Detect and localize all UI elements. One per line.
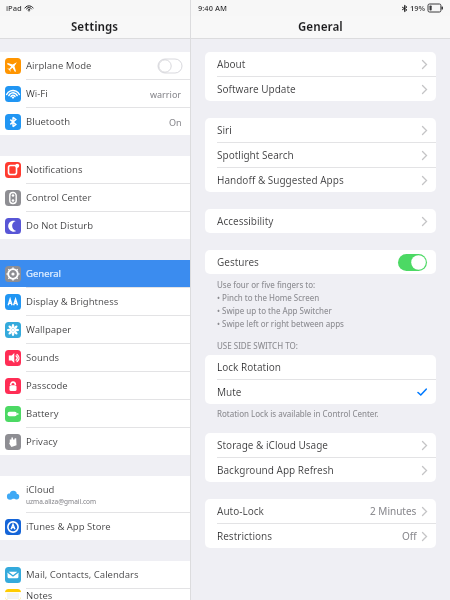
button[interactable]: Siri bbox=[205, 118, 436, 142]
staticText: Passcode bbox=[26, 379, 68, 392]
staticText: 19% bbox=[410, 3, 426, 13]
button[interactable]: Accessibility bbox=[205, 209, 436, 233]
staticText: USE SIDE SWITCH TO: bbox=[217, 340, 298, 351]
button[interactable]: Mute bbox=[205, 380, 436, 404]
button[interactable]: iTunes & App Store bbox=[0, 513, 190, 540]
staticText: On bbox=[169, 116, 182, 128]
staticText: Notifications bbox=[26, 163, 83, 176]
button[interactable]: Wi-Fi bbox=[0, 80, 190, 107]
button[interactable]: iCloud bbox=[0, 476, 190, 512]
button[interactable]: Do Not Disturb bbox=[0, 212, 190, 239]
staticText: 9:40 AM bbox=[198, 3, 227, 13]
staticText: Control Center bbox=[26, 191, 92, 204]
staticText: Battery bbox=[26, 407, 59, 420]
staticText: Siri bbox=[217, 123, 422, 137]
staticText: 2 Minutes bbox=[370, 504, 417, 518]
staticText: Auto-Lock bbox=[217, 504, 370, 518]
staticText: Storage & iCloud Usage bbox=[217, 438, 422, 452]
staticText: iCloud bbox=[26, 483, 55, 496]
button[interactable]: About bbox=[205, 52, 436, 76]
staticText: Privacy bbox=[26, 435, 58, 448]
button[interactable]: Background App Refresh bbox=[205, 458, 436, 482]
staticText: Use four or five fingers to: bbox=[217, 279, 316, 290]
button[interactable]: Passcode bbox=[0, 372, 190, 399]
staticText: Wallpaper bbox=[26, 323, 72, 336]
button[interactable]: Battery bbox=[0, 400, 190, 427]
staticText: • Swipe left or right between apps bbox=[217, 318, 344, 329]
button[interactable]: Notes bbox=[0, 589, 190, 600]
staticText: • Pinch to the Home Screen bbox=[217, 292, 320, 303]
button[interactable]: Handoff & Suggested Apps bbox=[205, 168, 436, 192]
button[interactable]: Software Update bbox=[205, 77, 436, 101]
button[interactable]: Storage & iCloud Usage bbox=[205, 433, 436, 457]
button[interactable]: Notifications bbox=[0, 156, 190, 183]
staticText: uzma.aliza@gmail.com bbox=[26, 497, 97, 506]
button[interactable]: Mail, Contacts, Calendars bbox=[0, 561, 190, 588]
staticText: General bbox=[26, 267, 62, 280]
staticText: • Swipe up to the App Switcher bbox=[217, 305, 332, 316]
button[interactable]: Auto-Lock bbox=[205, 499, 436, 523]
button[interactable]: Privacy bbox=[0, 428, 190, 455]
staticText: Notes bbox=[26, 589, 53, 600]
button[interactable]: Sounds bbox=[0, 344, 190, 371]
staticText: Settings bbox=[71, 19, 119, 35]
staticText: Mail, Contacts, Calendars bbox=[26, 568, 139, 581]
button[interactable]: Wallpaper bbox=[0, 316, 190, 343]
staticText: Sounds bbox=[26, 351, 60, 364]
button[interactable]: General bbox=[0, 260, 190, 287]
staticText: Do Not Disturb bbox=[26, 219, 94, 232]
button[interactable]: Restrictions bbox=[205, 524, 436, 548]
staticText: iTunes & App Store bbox=[26, 520, 111, 533]
staticText: Accessibility bbox=[217, 214, 422, 228]
staticText: About bbox=[217, 57, 422, 71]
staticText: iPad bbox=[6, 3, 22, 13]
staticText: Wi-Fi bbox=[26, 87, 48, 100]
staticText: Bluetooth bbox=[26, 115, 71, 128]
staticText: Spotlight Search bbox=[217, 148, 422, 162]
staticText: Lock Rotation bbox=[217, 360, 427, 374]
staticText: General bbox=[298, 19, 343, 35]
button[interactable]: Bluetooth bbox=[0, 108, 190, 135]
button[interactable]: Lock Rotation bbox=[205, 355, 436, 379]
staticText: Off bbox=[402, 529, 417, 543]
staticText: Display & Brightness bbox=[26, 295, 119, 308]
staticText: Mute bbox=[217, 385, 417, 399]
button[interactable]: Spotlight Search bbox=[205, 143, 436, 167]
staticText: Rotation Lock is available in Control Ce… bbox=[217, 408, 379, 419]
staticText: Airplane Mode bbox=[26, 59, 92, 72]
staticText: Software Update bbox=[217, 82, 422, 96]
button[interactable]: Control Center bbox=[0, 184, 190, 211]
button[interactable]: Display & Brightness bbox=[0, 288, 190, 315]
button[interactable]: Gestures toggle bbox=[398, 254, 427, 271]
staticText: Background App Refresh bbox=[217, 463, 422, 477]
button[interactable]: Gestures bbox=[205, 250, 436, 274]
button[interactable]: Airplane Mode toggle bbox=[158, 59, 182, 73]
staticText: Handoff & Suggested Apps bbox=[217, 173, 422, 187]
button[interactable]: Airplane Mode bbox=[0, 52, 190, 79]
staticText: warrior bbox=[150, 88, 182, 100]
staticText: Gestures bbox=[217, 255, 398, 269]
staticText: Restrictions bbox=[217, 529, 402, 543]
